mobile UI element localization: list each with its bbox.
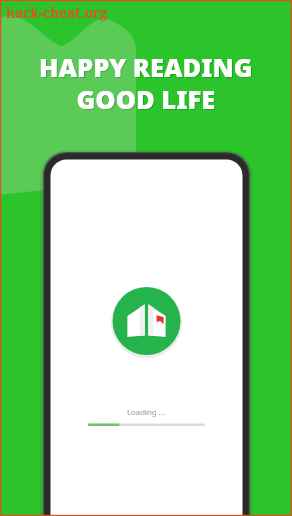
button[interactable]: Happy Reading Good Life splash screen [0, 0, 292, 516]
